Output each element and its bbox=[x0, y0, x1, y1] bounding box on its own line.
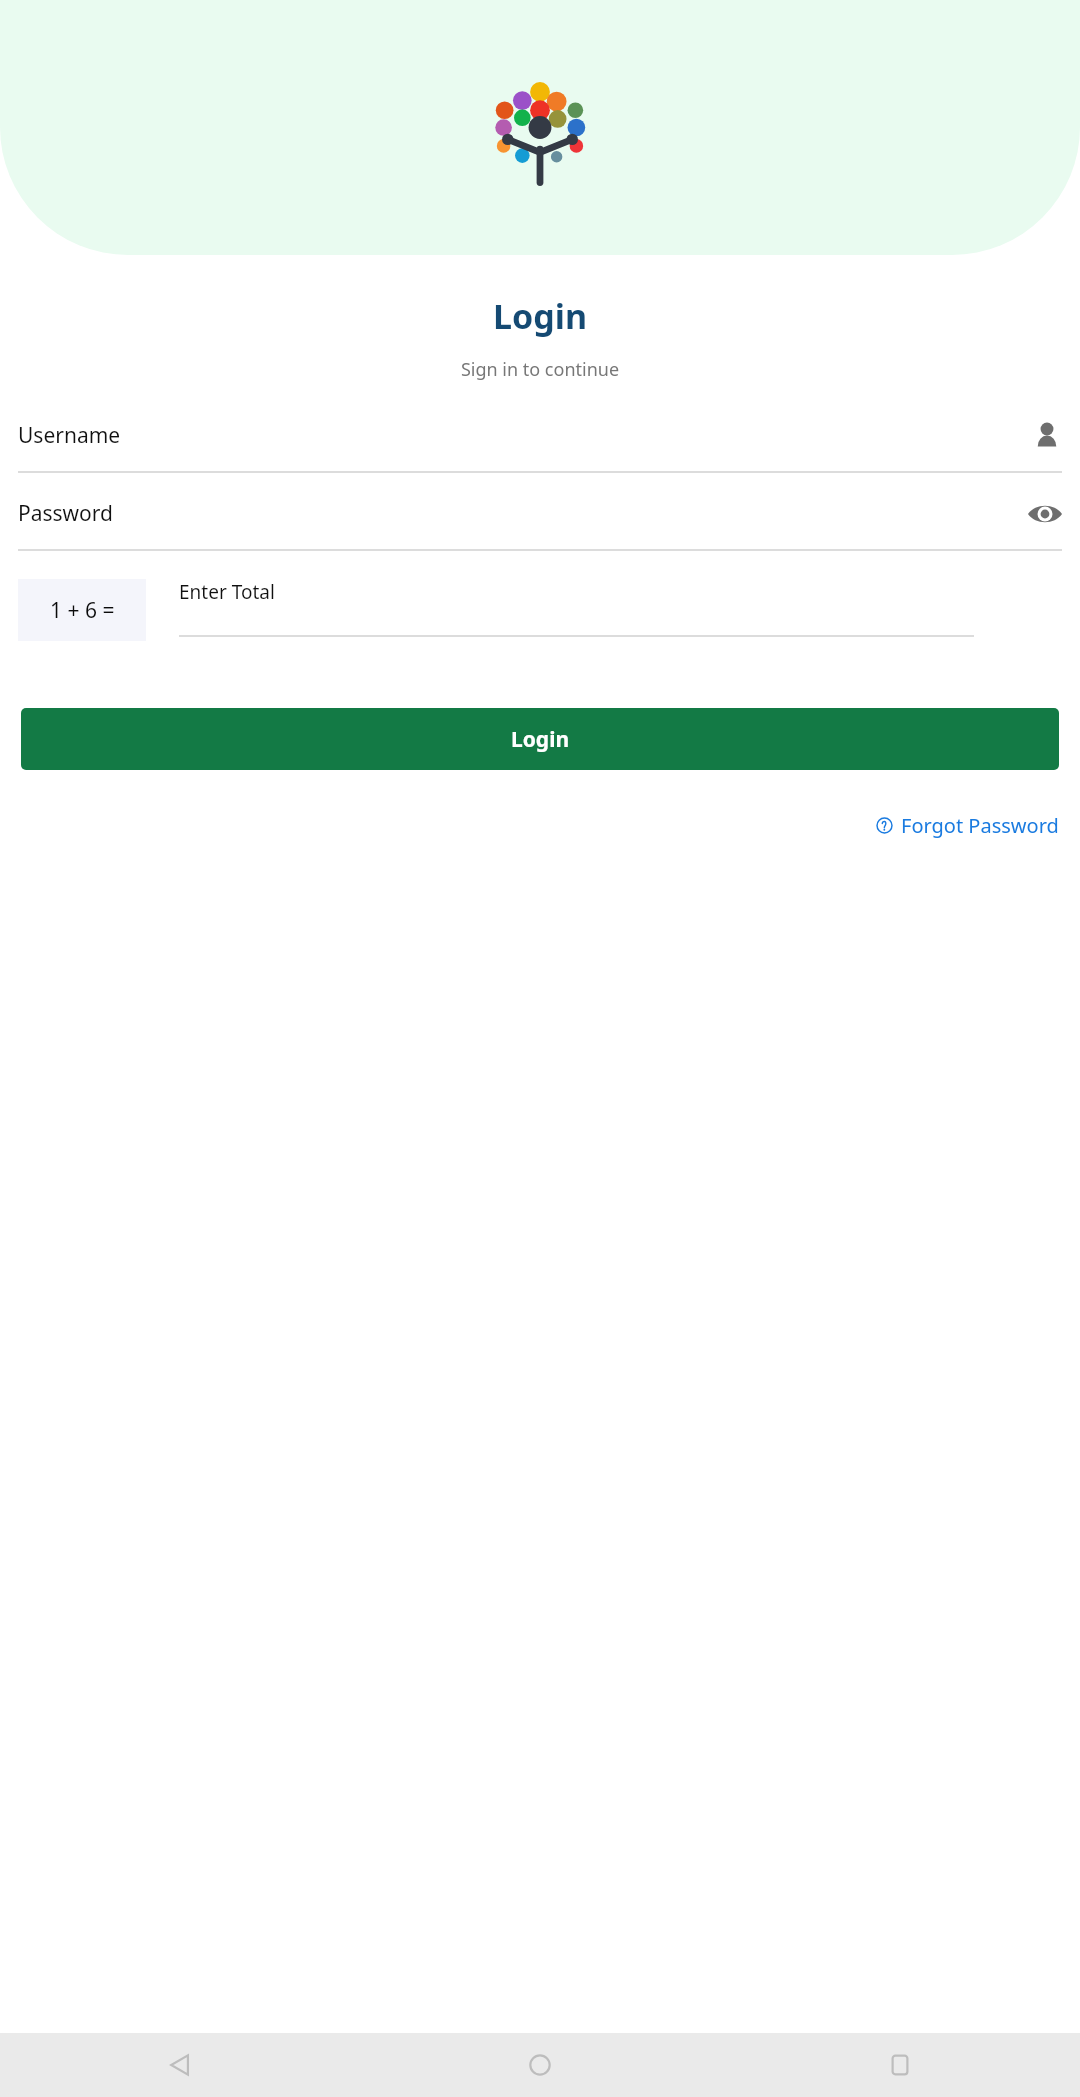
staticText: 1 + 6 = bbox=[50, 596, 115, 625]
staticText: Password bbox=[18, 499, 1028, 528]
button[interactable]: Password bbox=[18, 499, 1062, 551]
button[interactable]: Enter Total bbox=[179, 579, 974, 637]
staticText: Username bbox=[18, 421, 1032, 450]
staticText: Enter Total bbox=[179, 579, 275, 605]
button[interactable]: Forgot Password bbox=[876, 812, 1059, 839]
button[interactable]: Login bbox=[21, 708, 1059, 770]
button[interactable]: Password bbox=[1028, 503, 1062, 525]
button[interactable]: Username bbox=[1032, 420, 1062, 450]
button[interactable]: Username bbox=[18, 420, 1062, 473]
staticText: Login bbox=[511, 725, 570, 754]
staticText: Login bbox=[0, 293, 1080, 339]
button[interactable]: Home bbox=[360, 2033, 720, 2097]
button[interactable]: Back bbox=[0, 2033, 360, 2097]
staticText: Forgot Password bbox=[901, 812, 1059, 839]
staticText: Sign in to continue bbox=[0, 357, 1080, 382]
button[interactable]: Recents bbox=[720, 2033, 1080, 2097]
button[interactable]: 1 + 6 = bbox=[18, 579, 146, 641]
